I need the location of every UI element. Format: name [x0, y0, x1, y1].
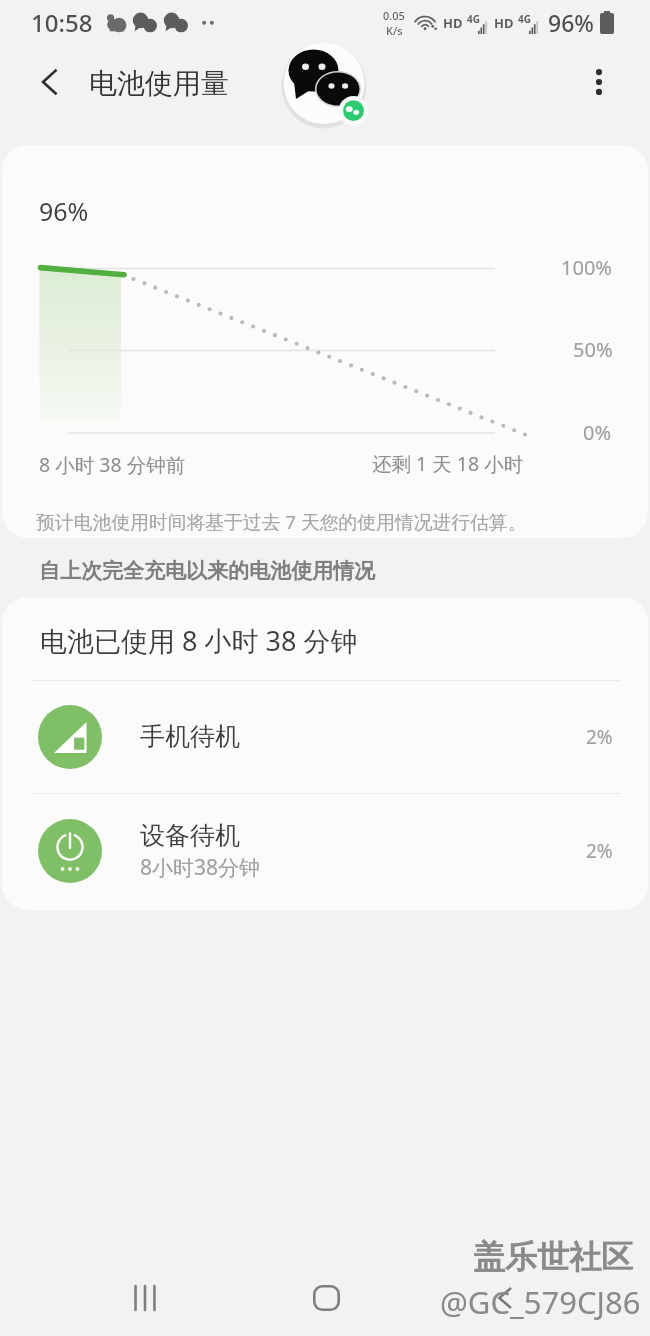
staticText: HD	[443, 14, 463, 32]
staticText: 2%	[586, 838, 613, 864]
staticText: 自上次完全充电以来的电池使用情况	[39, 558, 375, 584]
staticText: 0.05	[383, 8, 405, 23]
staticText: 4G	[518, 12, 531, 26]
button[interactable]: Recents	[119, 1272, 171, 1324]
staticText: 10:58	[31, 6, 93, 39]
staticText: 96%	[548, 7, 594, 38]
button[interactable]: 手机待机	[2, 680, 648, 793]
staticText: HD	[494, 14, 514, 32]
staticText: K/s	[386, 23, 403, 38]
staticText: 50%	[573, 336, 613, 363]
button[interactable]: Back	[479, 1272, 531, 1324]
staticText: 4G	[467, 12, 480, 26]
staticText: 预计电池使用时间将基于过去 7 天您的使用情况进行估算。	[36, 509, 527, 535]
staticText: 还剩 1 天 18 小时	[372, 450, 524, 477]
staticText: 盖乐世社区	[473, 1237, 633, 1277]
staticText: 8小时38分钟	[140, 853, 261, 882]
button[interactable]: WeChat floating window	[282, 42, 372, 132]
staticText: 手机待机	[140, 721, 240, 752]
button[interactable]: More options	[575, 58, 623, 106]
staticText: 96%	[39, 194, 89, 228]
staticText: 电池使用量	[89, 66, 229, 101]
button[interactable]: Back	[25, 58, 73, 106]
staticText: 100%	[561, 254, 612, 281]
button[interactable]: 设备待机	[2, 793, 648, 909]
staticText: 设备待机	[140, 820, 240, 851]
button[interactable]: Home	[300, 1272, 352, 1324]
staticText: 8 小时 38 分钟前	[39, 451, 186, 478]
staticText: 电池已使用 8 小时 38 分钟	[40, 622, 358, 659]
staticText: 2%	[586, 724, 613, 750]
staticText: @GC_579CJ86	[440, 1281, 641, 1323]
staticText: 0%	[583, 419, 612, 446]
